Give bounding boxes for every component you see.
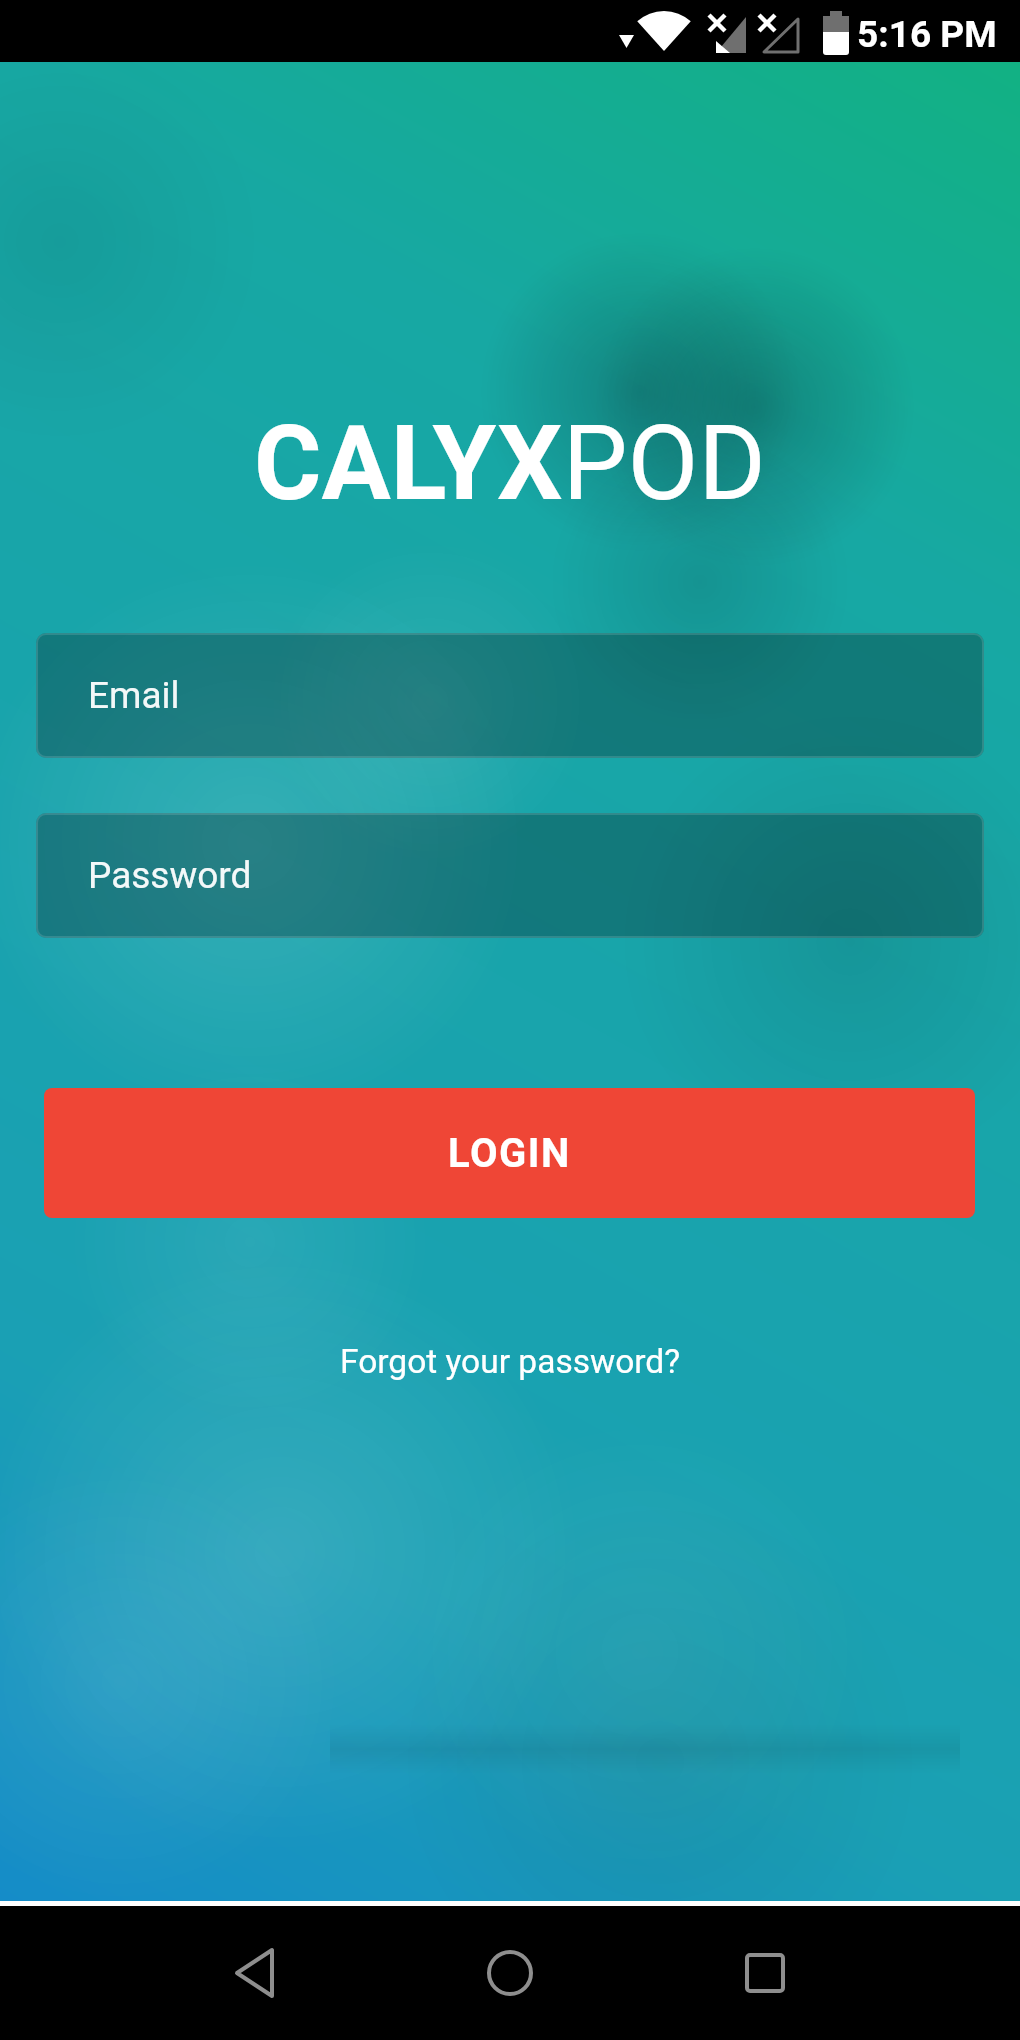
staticText: Email	[88, 674, 180, 717]
staticText: LOGIN	[448, 1130, 571, 1177]
button[interactable]: Forgot your password?	[340, 1342, 681, 1381]
button[interactable]	[680, 1906, 850, 2040]
button[interactable]: Password	[36, 813, 984, 938]
staticText: Password	[88, 854, 252, 897]
button[interactable]: LOGIN	[44, 1088, 975, 1218]
staticText: CALYXPOD	[254, 403, 766, 524]
button[interactable]	[425, 1906, 595, 2040]
button[interactable]	[170, 1906, 340, 2040]
button[interactable]: Email	[36, 633, 984, 758]
staticText: 5:16 PM	[857, 13, 997, 56]
